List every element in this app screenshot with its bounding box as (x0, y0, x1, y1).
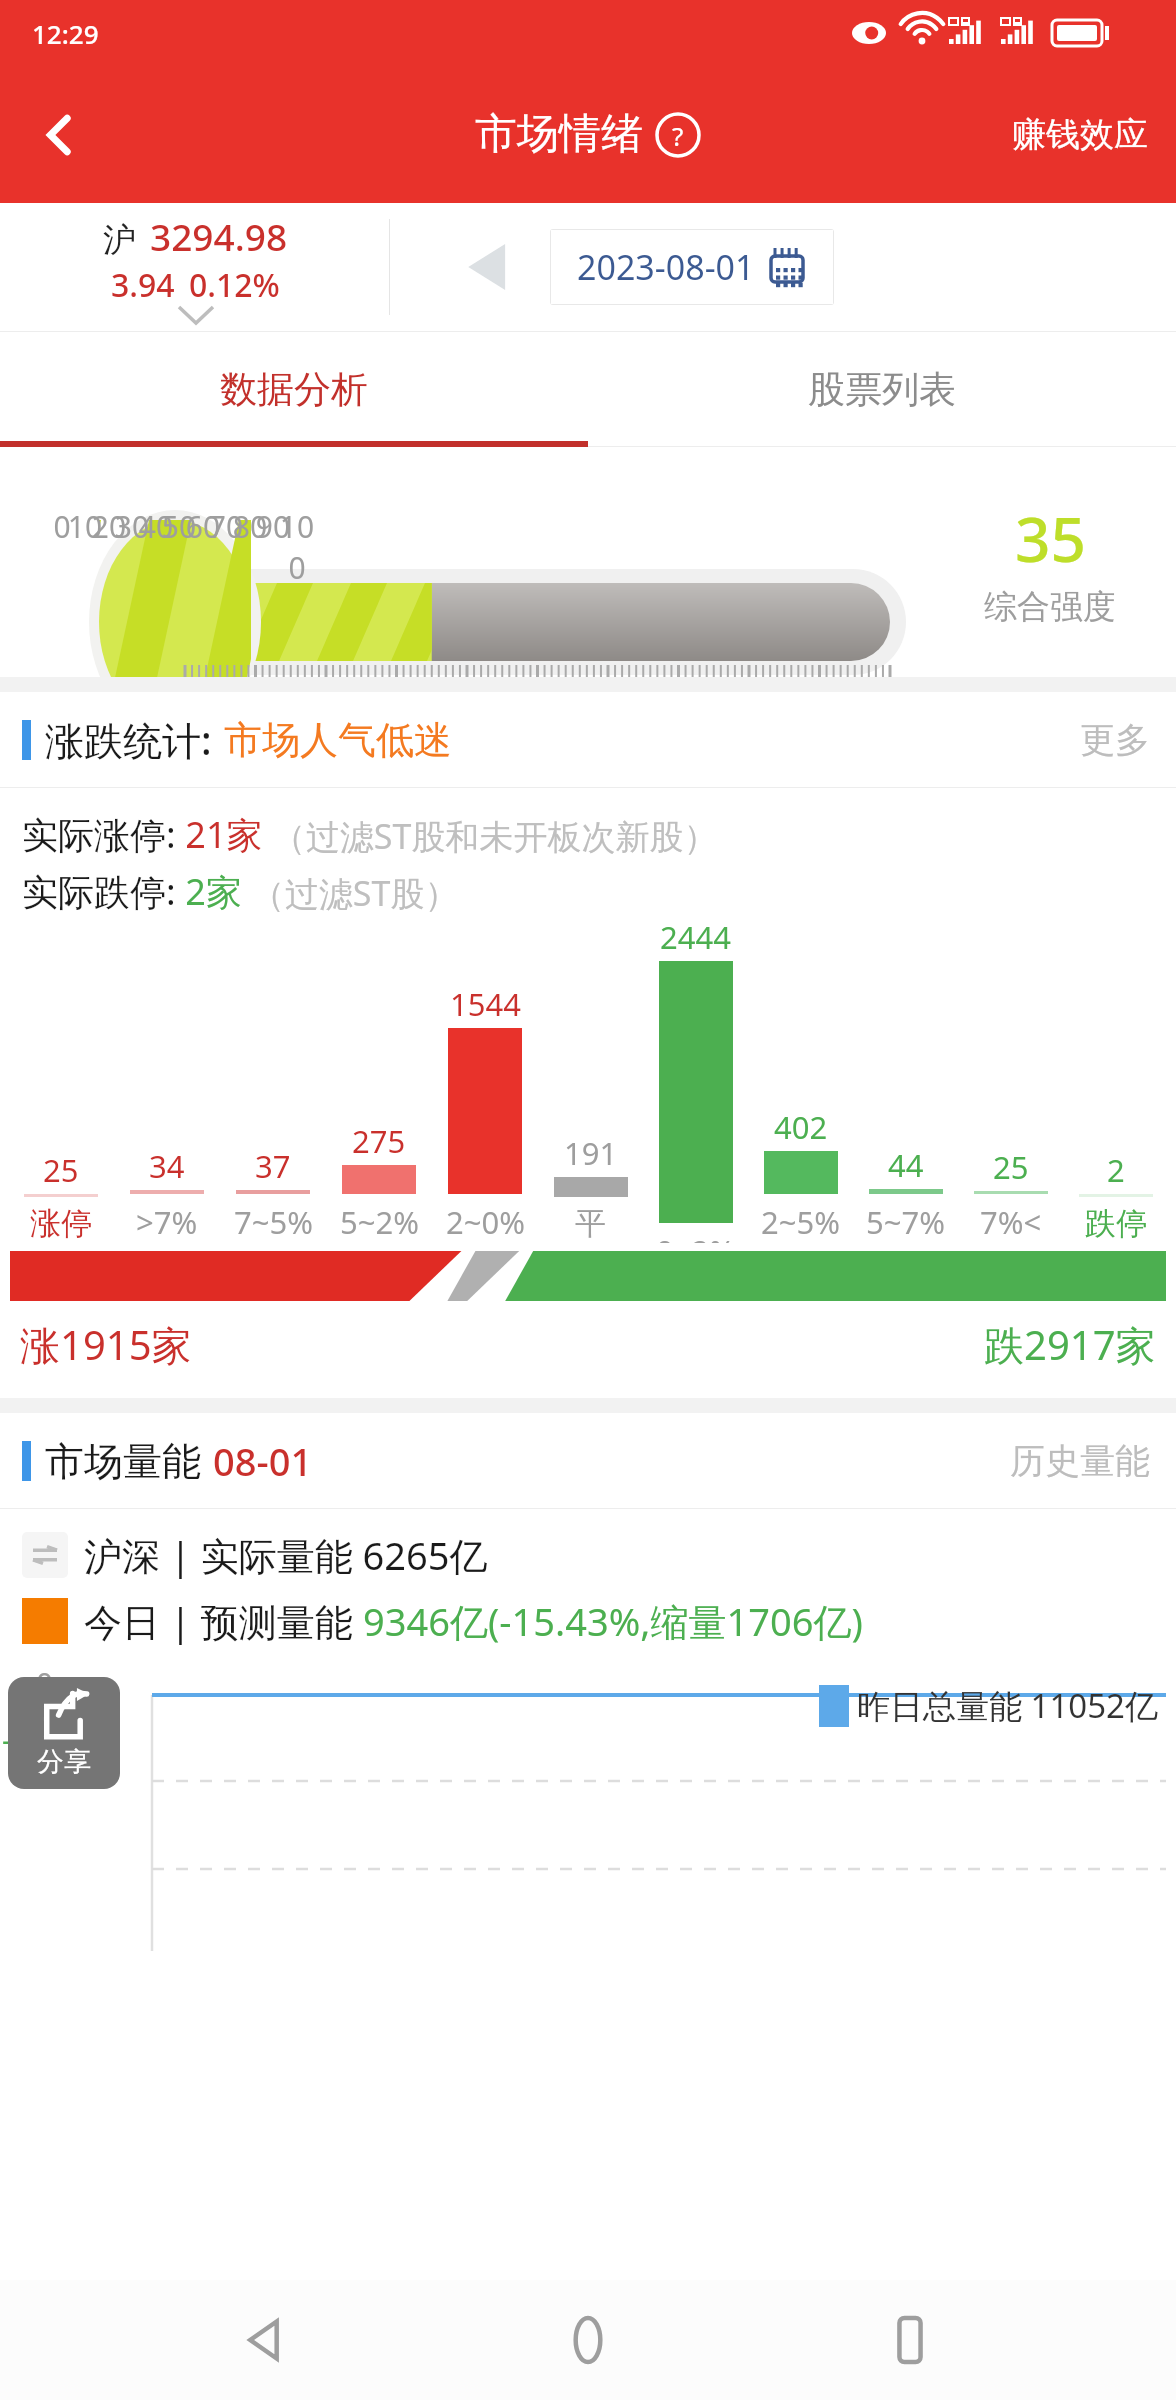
staticText: （过滤ST股和未开板次新股） (263, 813, 718, 859)
button[interactable]: 股票列表 (588, 332, 1176, 447)
staticText: 35 (1015, 496, 1086, 580)
staticText: 90 (251, 506, 295, 547)
button[interactable]: Back (212, 2285, 322, 2395)
staticText: 2~5% (761, 1201, 840, 1243)
staticText: 80 (228, 506, 272, 547)
staticText: 7~5% (234, 1201, 313, 1243)
staticText: （过滤ST股） (242, 870, 459, 916)
staticText: 50 (157, 506, 201, 547)
button[interactable]: 更多 (1054, 692, 1176, 787)
staticText: 1544 (450, 983, 521, 1025)
staticText: 综合强度 (984, 586, 1116, 628)
staticText: 2 (1107, 1149, 1125, 1191)
staticText: 70 (204, 506, 248, 547)
staticText: 3294.98 (150, 211, 288, 261)
staticText: 40 (134, 506, 178, 547)
button[interactable]: 分享 (8, 1677, 120, 1789)
staticText: 跌停 (1085, 1204, 1147, 1243)
staticText: 0 (40, 506, 84, 547)
button[interactable]: Recent apps (855, 2285, 965, 2395)
button[interactable]: 历史量能 (984, 1413, 1176, 1508)
staticText: >7% (136, 1201, 198, 1243)
staticText: 08-01 (213, 1435, 313, 1487)
staticText: 25 (993, 1146, 1029, 1188)
staticText: 37 (255, 1145, 291, 1187)
button[interactable]: 沪 (0, 203, 390, 331)
staticText: 60 (181, 506, 225, 547)
staticText: 2444 (660, 916, 731, 958)
button[interactable]: Home (533, 2285, 643, 2395)
staticText: -12.25% (2, 1719, 114, 1760)
staticText: 涨1915家 (20, 1317, 192, 1372)
staticText: 昨日总量能 11052亿 (857, 1683, 1158, 1728)
staticText: 今日 | 预测量能 (84, 1595, 363, 1647)
staticText: ? (672, 118, 684, 153)
staticText: 12:29 (32, 16, 99, 51)
staticText: 30 (110, 506, 154, 547)
staticText: 实际涨停: (22, 810, 176, 859)
button[interactable]: 数据分析 (0, 332, 588, 447)
staticText: 市场量能 (45, 1437, 201, 1486)
staticText: 历史量能 (1010, 1439, 1150, 1483)
staticText: 实际跌停: (22, 867, 176, 916)
staticText: 9346亿(-15.43%,缩量1706亿) (363, 1595, 863, 1647)
staticText: 2023-08-01 (577, 244, 755, 290)
staticText: 赚钱效应 (1012, 113, 1148, 156)
staticText: 3.94 (111, 263, 175, 307)
staticText: 25 (43, 1149, 79, 1191)
staticText: 0.12% (189, 263, 280, 307)
staticText: 191 (564, 1132, 618, 1174)
button[interactable]: 2023-08-01 (551, 230, 833, 304)
button[interactable]: Previous day (460, 238, 518, 296)
staticText: 涨跌统计: (45, 713, 212, 766)
staticText: 沪深 | 实际量能 6265亿 (84, 1529, 488, 1581)
staticText: 100 (275, 506, 319, 588)
staticText: 0~2% (656, 1230, 735, 1243)
staticText: 10 (63, 506, 107, 547)
button[interactable]: Help (655, 112, 701, 158)
button[interactable]: Back (0, 66, 120, 203)
staticText: 5~7% (866, 1201, 945, 1243)
staticText: 2~0% (446, 1201, 525, 1243)
staticText: 跌2917家 (984, 1317, 1156, 1372)
staticText: 34 (149, 1145, 185, 1187)
staticText: 股票列表 (808, 366, 956, 413)
staticText: 市场情绪 (475, 108, 643, 161)
staticText: 数据分析 (220, 366, 368, 413)
staticText: 市场人气低迷 (224, 716, 452, 764)
staticText: 沪 (103, 219, 136, 261)
staticText: 21家 (176, 810, 263, 859)
staticText: 分享 (37, 1745, 91, 1779)
staticText: 涨停 (30, 1204, 92, 1243)
staticText: 5~2% (340, 1201, 419, 1243)
staticText: 20 (87, 506, 131, 547)
staticText: 7%< (980, 1201, 1042, 1243)
staticText: -6.12% (8, 1690, 103, 1731)
staticText: 44 (888, 1144, 924, 1186)
staticText: 平 (575, 1204, 606, 1243)
staticText: 更多 (1080, 718, 1150, 762)
staticText: 402 (774, 1106, 828, 1148)
staticText: 275 (352, 1120, 406, 1162)
staticText: 2家 (176, 867, 242, 916)
staticText: 0 (36, 1663, 54, 1704)
button[interactable]: 赚钱效应 (984, 66, 1176, 203)
